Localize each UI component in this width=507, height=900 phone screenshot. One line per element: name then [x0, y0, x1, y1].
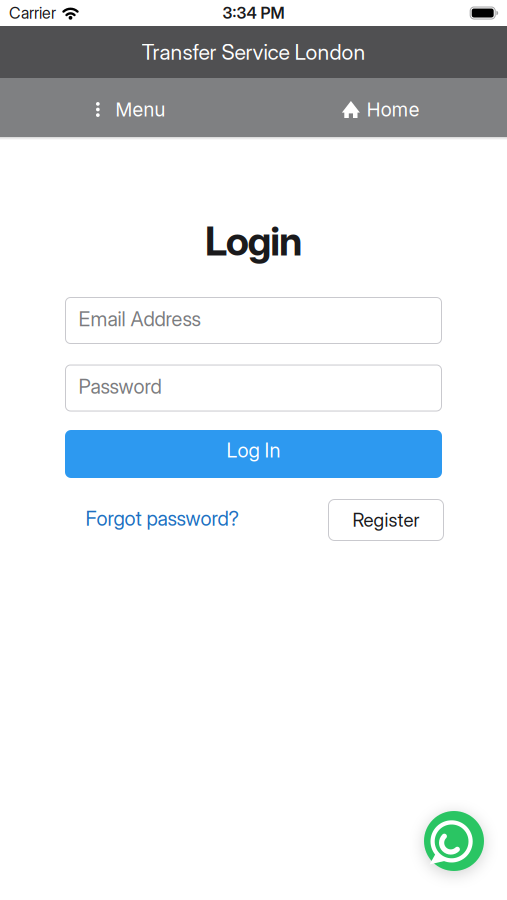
staticText: Carrier	[9, 4, 56, 22]
button[interactable]: Menu	[0, 82, 253, 137]
staticText: Transfer Service London	[141, 39, 365, 65]
staticText: Menu	[115, 98, 165, 121]
staticText: Log In	[226, 438, 280, 462]
staticText: Login	[205, 217, 302, 265]
staticText: Forgot password?	[85, 507, 238, 530]
button[interactable]: Home	[253, 82, 507, 137]
button[interactable]: Forgot password?	[85, 507, 238, 530]
button[interactable]: Register	[328, 499, 444, 541]
staticText: Password	[78, 375, 161, 398]
staticText: Email Address	[78, 307, 200, 331]
staticText: Home	[367, 98, 420, 121]
button[interactable]: Log In	[65, 430, 442, 478]
button[interactable]: Chat on WhatsApp	[424, 811, 484, 871]
staticText: 3:34 PM	[222, 4, 284, 22]
staticText: Register	[352, 509, 419, 531]
